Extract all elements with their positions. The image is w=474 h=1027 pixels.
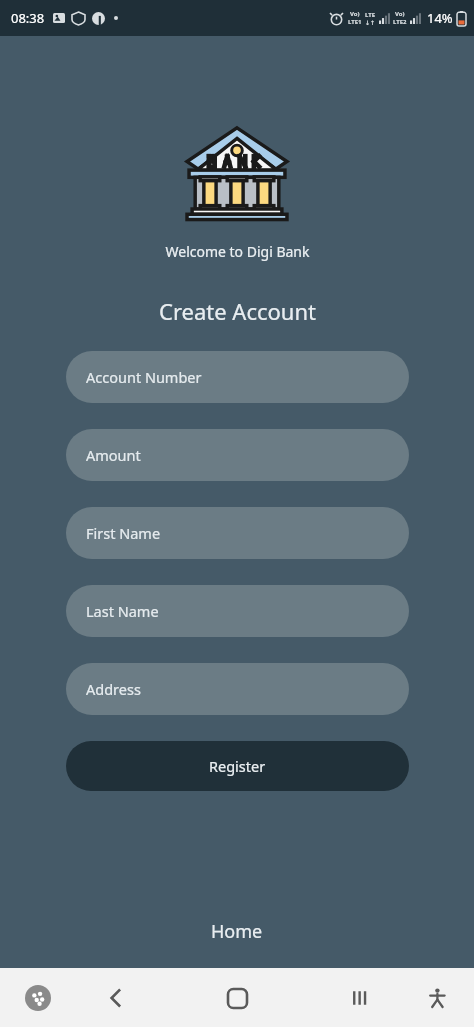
staticText: Address — [86, 679, 141, 699]
button[interactable]: Recent apps — [337, 975, 383, 1021]
button[interactable]: Back — [93, 975, 139, 1021]
button[interactable]: Change keyboard — [18, 978, 58, 1018]
button[interactable]: First Name — [66, 507, 409, 559]
staticText: 14% — [427, 9, 453, 27]
staticText: First Name — [86, 523, 161, 543]
staticText: Last Name — [86, 601, 159, 621]
staticText: LTE1 — [348, 18, 362, 26]
staticText: Vo) — [395, 10, 405, 18]
button[interactable]: Home — [197, 913, 277, 950]
staticText: LTE — [365, 11, 376, 19]
button[interactable]: Home — [214, 975, 260, 1021]
staticText: Vo) — [350, 10, 360, 18]
staticText: Home — [211, 919, 263, 944]
button[interactable]: Address — [66, 663, 409, 715]
staticText: Account Number — [86, 367, 202, 387]
staticText: Register — [209, 756, 266, 776]
button[interactable]: Last Name — [66, 585, 409, 637]
button[interactable]: Amount — [66, 429, 409, 481]
staticText: Amount — [86, 445, 141, 465]
staticText: ↓↑ — [365, 19, 376, 26]
staticText: Welcome to Digi Bank — [165, 242, 310, 261]
staticText: 08:38 — [11, 9, 45, 27]
staticText: LTE2 — [393, 18, 407, 26]
staticText: Create Account — [159, 296, 316, 326]
button[interactable]: Accessibility — [414, 975, 460, 1021]
button[interactable]: Register — [66, 741, 409, 791]
button[interactable]: Account Number — [66, 351, 409, 403]
